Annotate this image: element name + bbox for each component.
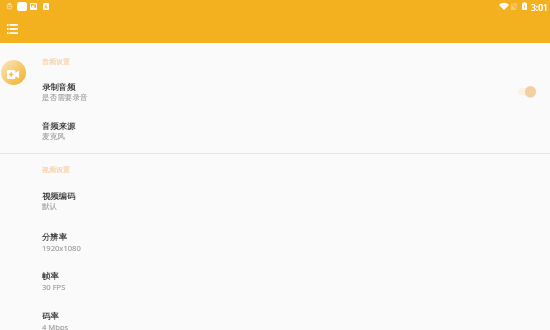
staticText: 3:01 [531, 2, 548, 14]
staticText: 视频编码 [42, 191, 76, 201]
button[interactable]: 音频来源 [0, 120, 550, 158]
staticText: 视频设置 [42, 165, 70, 174]
staticText: 麦克风 [42, 132, 65, 142]
button[interactable]: 录制音频 [0, 81, 550, 119]
button[interactable]: 帧率 [0, 270, 550, 308]
staticText: 是否需要录音 [42, 93, 88, 103]
button[interactable]: New recording [1, 60, 26, 85]
staticText: 帧率 [42, 271, 59, 281]
button[interactable]: 视频编码 [0, 190, 550, 228]
staticText: 30 FPS [42, 282, 66, 292]
staticText: 默认 [42, 202, 58, 212]
staticText: 音频设置 [42, 57, 70, 66]
staticText: 录制音频 [42, 82, 76, 92]
button[interactable]: Record audio toggle [512, 81, 542, 119]
staticText: 1920x1080 [42, 243, 81, 253]
staticText: 码率 [42, 311, 59, 321]
button[interactable]: 码率 [0, 310, 550, 330]
button[interactable]: 分辨率 [0, 231, 550, 269]
staticText: 4 Mbps [42, 322, 69, 330]
staticText: 分辨率 [42, 232, 67, 242]
staticText: 音频来源 [42, 121, 76, 131]
button[interactable]: Menu [1, 20, 24, 43]
